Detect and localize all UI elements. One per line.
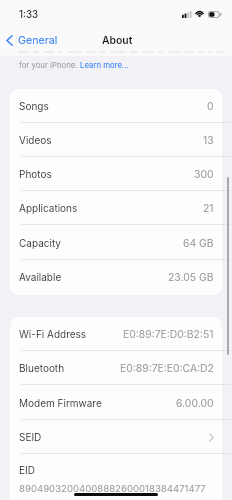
staticText: Songs — [19, 100, 49, 112]
staticText: Modem Firmware — [19, 397, 102, 409]
staticText: 21 — [203, 202, 214, 215]
staticText: EID — [19, 464, 35, 476]
button[interactable]: Wi-Fi Address — [10, 317, 222, 351]
staticText: Applications — [19, 202, 78, 214]
button[interactable]: Modem Firmware — [10, 386, 222, 420]
button[interactable]: Videos — [10, 123, 222, 157]
staticText: Photos — [19, 168, 52, 180]
button[interactable]: Capacity — [10, 226, 222, 260]
staticText: Available — [19, 271, 62, 283]
staticText: E0:89:7E:D0:B2:51 — [123, 328, 214, 341]
other: SEID details — [209, 433, 214, 442]
staticText: 23.05 GB — [168, 271, 214, 284]
staticText: SEID — [19, 431, 42, 443]
staticText: General — [18, 34, 58, 47]
button[interactable]: Bluetooth — [10, 351, 222, 385]
staticText: 0 — [207, 100, 214, 113]
staticText: for your iPhone. — [19, 60, 80, 69]
staticText: About — [102, 34, 133, 47]
button[interactable]: Applications — [10, 191, 222, 225]
button[interactable]: General — [6, 33, 58, 47]
staticText: 89049032004008882600018384471477 — [19, 483, 206, 495]
staticText: 300 — [194, 168, 214, 181]
staticText: Wi-Fi Address — [19, 328, 87, 340]
staticText: 1:33 — [19, 9, 39, 21]
button[interactable]: Photos — [10, 157, 222, 191]
button[interactable]: Learn more... — [80, 60, 129, 69]
staticText: 6.00.00 — [176, 397, 214, 410]
staticText: Capacity — [19, 237, 61, 249]
button[interactable]: EID — [10, 454, 222, 496]
button[interactable]: SEID — [10, 420, 222, 454]
button[interactable]: Available — [10, 260, 222, 294]
staticText: Videos — [19, 134, 52, 146]
staticText: Bluetooth — [19, 362, 65, 374]
staticText: 13 — [203, 134, 214, 147]
staticText: E0:89:7E:E0:CA:D2 — [120, 362, 214, 375]
staticText: 64 GB — [183, 237, 214, 250]
button[interactable]: Songs — [10, 89, 222, 123]
